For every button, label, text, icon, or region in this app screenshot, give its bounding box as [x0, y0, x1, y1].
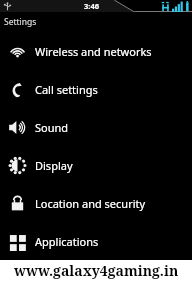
staticText: Sound [35, 120, 69, 135]
staticText: Call settings [35, 82, 98, 97]
staticText: 3:46 [84, 1, 99, 11]
staticText: Wireless and networks [35, 44, 152, 59]
staticText: Location and security [35, 196, 146, 211]
button[interactable]: Location and security [0, 184, 192, 222]
button[interactable]: Call settings [0, 70, 192, 108]
staticText: Applications [35, 234, 99, 249]
staticText: Settings [4, 16, 37, 28]
staticText: www.galaxy4gaming.in [14, 261, 179, 280]
button[interactable]: Display [0, 146, 192, 184]
staticText: Display [35, 158, 73, 173]
button[interactable]: Applications [0, 222, 192, 260]
button[interactable]: Wireless and networks [0, 32, 192, 70]
button[interactable]: Sound [0, 108, 192, 146]
other: USB connected [3, 2, 12, 11]
